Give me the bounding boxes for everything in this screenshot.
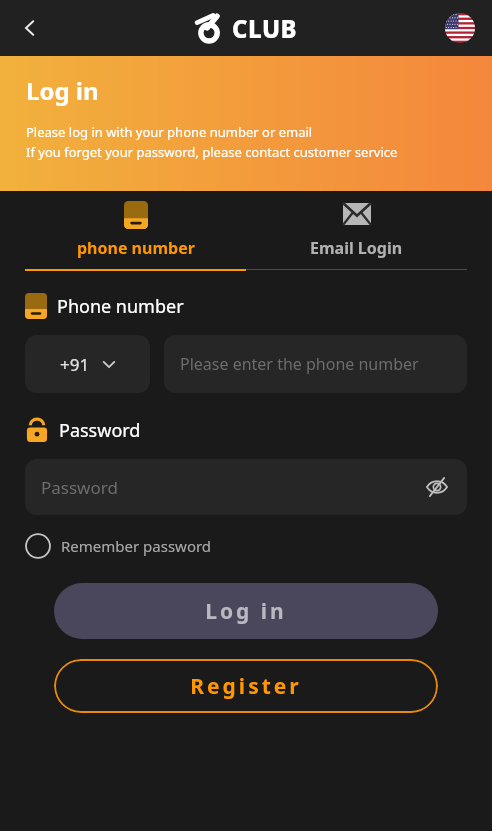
button[interactable]: Register xyxy=(54,659,438,713)
staticText: Remember password xyxy=(61,536,212,556)
button[interactable]: Language xyxy=(442,10,478,46)
staticText: +91 xyxy=(60,353,90,376)
staticText: Please enter the phone number xyxy=(180,353,419,375)
staticText: Email Login xyxy=(310,237,403,259)
staticText: If you forget your password, please cont… xyxy=(26,143,398,161)
button[interactable]: phone number xyxy=(25,191,246,271)
button[interactable]: Remember password xyxy=(25,533,212,559)
button[interactable]: Log in xyxy=(54,583,438,639)
button[interactable]: +91 xyxy=(25,335,150,393)
staticText: Password xyxy=(41,476,118,499)
staticText: Password xyxy=(59,418,141,443)
staticText: Register xyxy=(190,672,302,701)
staticText: CLUB xyxy=(232,12,298,45)
button[interactable]: Password xyxy=(25,459,467,515)
staticText: Log in xyxy=(205,597,287,626)
button[interactable]: Back xyxy=(8,6,52,50)
button[interactable]: Please enter the phone number xyxy=(164,335,467,393)
button[interactable]: Show password xyxy=(419,469,455,505)
button[interactable]: Email Login xyxy=(246,191,467,270)
staticText: phone number xyxy=(77,237,195,259)
staticText: Log in xyxy=(26,74,99,107)
staticText: Phone number xyxy=(57,294,184,319)
staticText: Please log in with your phone number or … xyxy=(26,123,313,141)
